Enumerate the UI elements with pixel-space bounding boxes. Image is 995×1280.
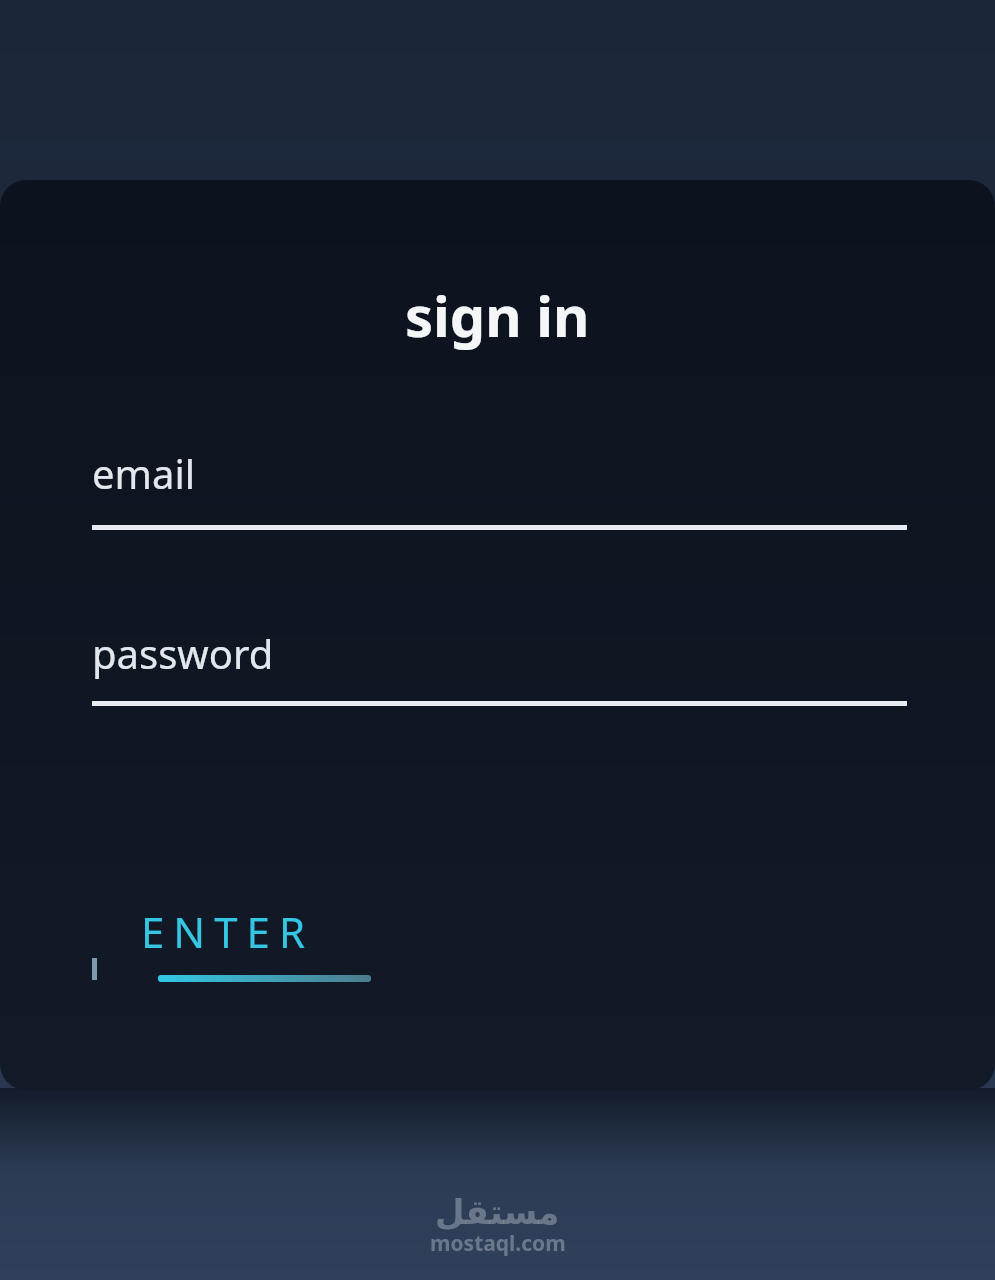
staticText: email [92, 446, 196, 500]
staticText: مستقل [435, 1192, 560, 1232]
staticText: password [92, 626, 274, 680]
button[interactable]: ENTER [120, 880, 395, 990]
button[interactable]: password [92, 616, 907, 711]
staticText: sign in [405, 277, 590, 353]
staticText: ENTER [141, 903, 315, 960]
staticText: mostaql.com [430, 1229, 566, 1258]
button[interactable]: email [92, 440, 907, 535]
